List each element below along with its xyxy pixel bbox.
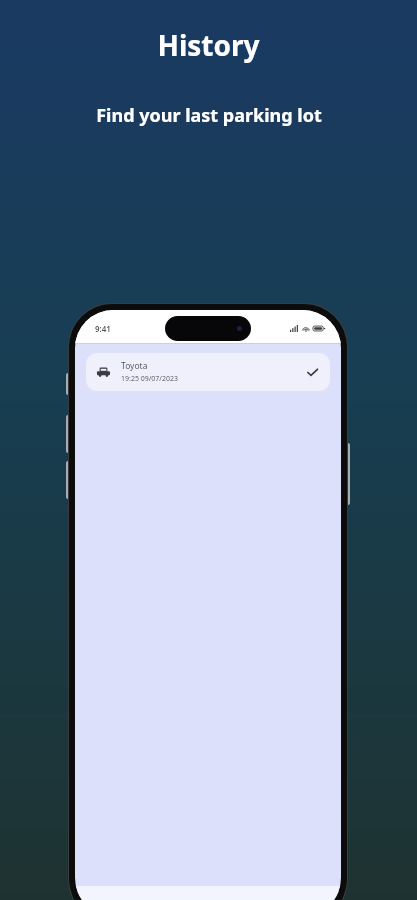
other: Selected (305, 365, 319, 379)
staticText: History (157, 26, 260, 64)
staticText: 19:25 09/07/2023 (121, 374, 178, 384)
staticText: 9:41 (95, 323, 111, 334)
staticText: Find your last parking lot (96, 103, 322, 128)
button[interactable]: Toyota (86, 353, 330, 391)
staticText: Toyota (121, 360, 148, 372)
